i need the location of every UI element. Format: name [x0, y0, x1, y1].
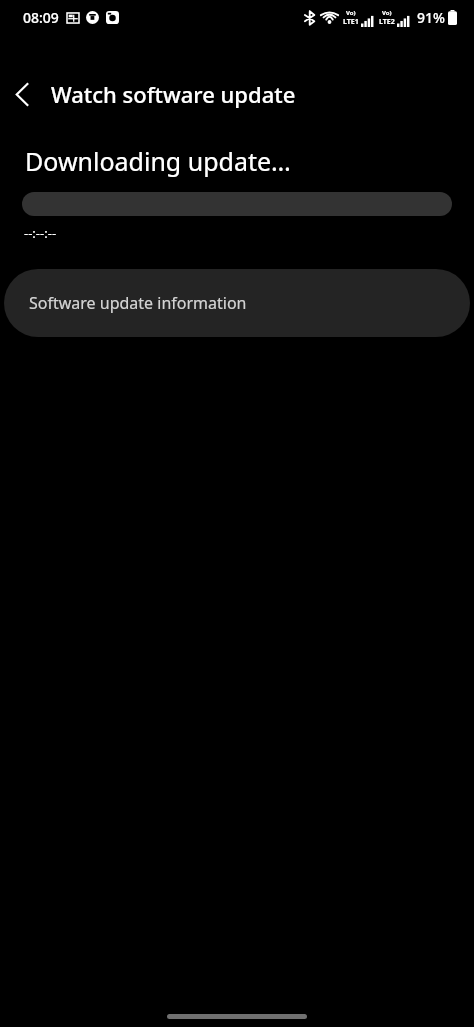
button[interactable]: Back	[0, 72, 44, 116]
staticText: --:--:--	[24, 224, 57, 242]
staticText: Vo)	[382, 9, 392, 17]
staticText: Vo)	[346, 9, 356, 17]
staticText: LTE2	[379, 17, 395, 27]
button[interactable]: Software update information	[4, 269, 470, 337]
staticText: 08:09	[23, 8, 59, 27]
staticText: Downloading update…	[25, 144, 291, 178]
staticText: 91%	[417, 8, 445, 27]
staticText: Watch software update	[51, 79, 296, 109]
staticText: Software update information	[29, 292, 247, 314]
staticText: LTE1	[343, 17, 359, 27]
